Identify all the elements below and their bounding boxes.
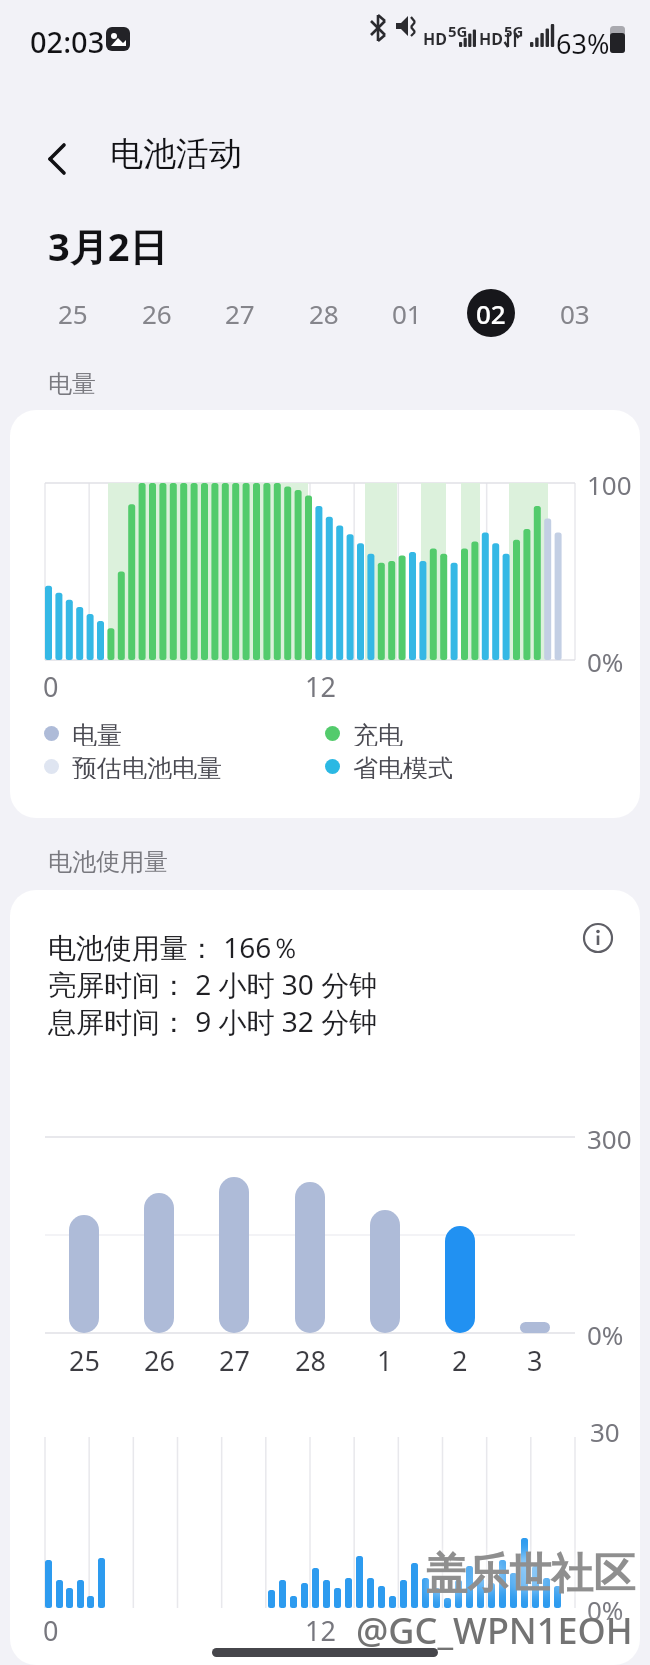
staticText: 300 [587, 1121, 632, 1156]
staticText: @GC_WPN1EOH [356, 1606, 633, 1655]
staticText: 5G [504, 21, 524, 41]
staticText: 预估电池电量 [72, 753, 222, 779]
staticText: 28 [309, 296, 339, 331]
button[interactable]: 01 [383, 289, 431, 337]
button[interactable]: 28 [300, 289, 348, 337]
staticText: 2 [452, 1342, 468, 1379]
button[interactable]: 充电 [325, 720, 403, 746]
staticText: 3 [527, 1342, 543, 1379]
staticText: 0% [587, 644, 624, 679]
staticText: 12 [305, 668, 336, 705]
staticText: 26 [142, 296, 172, 331]
staticText: 电池使用量 [48, 847, 168, 877]
staticText: 26 [144, 1342, 175, 1379]
staticText: 3月2日 [48, 220, 168, 272]
button[interactable] [30, 130, 85, 185]
button[interactable] [580, 920, 616, 956]
staticText: 30 [590, 1414, 620, 1449]
staticText: 1 [377, 1342, 393, 1379]
staticText: HD [423, 28, 447, 50]
staticText: 省电模式 [353, 753, 453, 779]
button[interactable]: 电量 [44, 720, 122, 746]
staticText: 电量 [72, 720, 122, 746]
button[interactable]: 03 [551, 289, 599, 337]
staticText: 0% [587, 1317, 624, 1352]
button[interactable]: 省电模式 [325, 753, 453, 779]
staticText: 28 [295, 1342, 326, 1379]
staticText: 充电 [353, 720, 403, 746]
staticText: 02:03 [30, 22, 105, 61]
button[interactable]: 02 [467, 289, 515, 337]
staticText: 电池使用量： 166％ [48, 928, 300, 966]
staticText: 电量 [48, 369, 96, 399]
staticText: 27 [225, 296, 255, 331]
staticText: 0 [43, 668, 59, 705]
staticText: 盖乐世社区 [425, 1548, 635, 1601]
staticText: 0% [587, 1592, 624, 1627]
staticText: HD [479, 28, 503, 50]
staticText: 100 [587, 467, 632, 502]
staticText: 01 [392, 296, 422, 331]
staticText: 息屏时间： 9 小时 32 分钟 [48, 1002, 378, 1040]
staticText: 12 [305, 1612, 336, 1649]
staticText: 25 [58, 296, 88, 331]
staticText: 02 [476, 296, 506, 331]
staticText: 0 [43, 1612, 59, 1649]
staticText: 电池活动 [110, 133, 242, 175]
staticText: 03 [560, 296, 590, 331]
staticText: 亮屏时间： 2 小时 30 分钟 [48, 965, 378, 1003]
staticText: 27 [219, 1342, 250, 1379]
staticText: 63% [556, 25, 610, 62]
staticText: 25 [69, 1342, 100, 1379]
staticText: 5G [448, 21, 468, 41]
button[interactable]: 27 [216, 289, 264, 337]
button[interactable]: 26 [133, 289, 181, 337]
button[interactable]: 预估电池电量 [44, 753, 222, 779]
button[interactable]: 25 [49, 289, 97, 337]
